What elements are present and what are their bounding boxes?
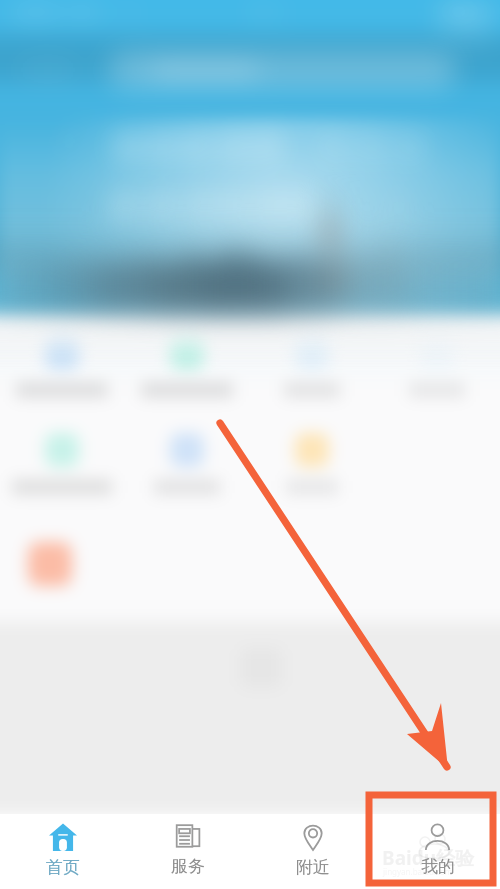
button[interactable]: 服务 — [125, 814, 250, 877]
staticText: 我的 — [421, 856, 455, 877]
staticText: 附近 — [296, 857, 330, 878]
button[interactable]: 附近 — [250, 814, 375, 878]
staticText: Baidu经验 — [382, 845, 475, 871]
staticText: 服务 — [171, 856, 205, 877]
staticText: jingyan.baidu.com — [383, 866, 453, 877]
button[interactable]: 首页 — [0, 814, 125, 878]
staticText: 首页 — [46, 857, 80, 878]
button[interactable]: 我的 — [375, 814, 500, 877]
